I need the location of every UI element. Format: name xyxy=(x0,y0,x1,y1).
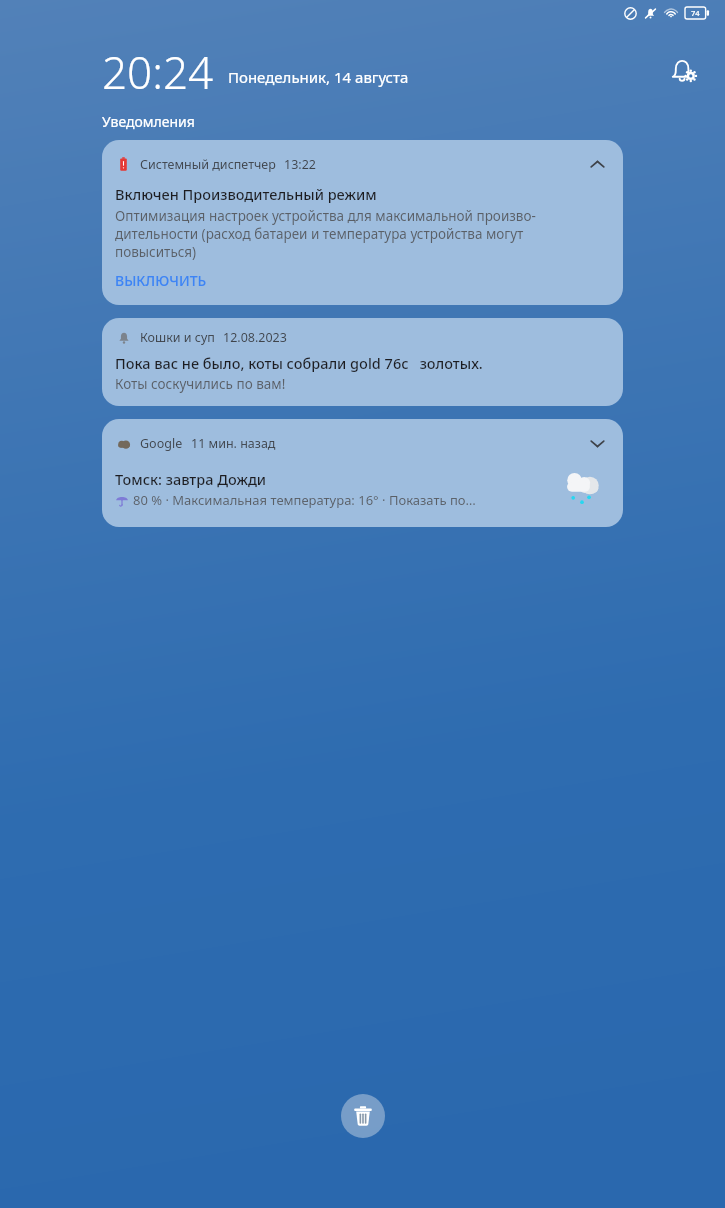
staticText: Понедельник, 14 августа xyxy=(228,67,409,87)
staticText: Кошки и суп xyxy=(140,329,215,346)
button[interactable]: Expand xyxy=(584,430,610,456)
staticText: Включен Производительный режим xyxy=(115,184,377,204)
button[interactable]: Clear all notifications xyxy=(341,1094,385,1138)
staticText: 80 % · Максимальная температура: 16° · П… xyxy=(133,491,476,509)
button[interactable]: ВЫКЛЮЧИТЬ xyxy=(115,271,207,290)
button[interactable]: Кошки и суп xyxy=(102,318,623,406)
staticText: Коты соскучились по вам! xyxy=(115,375,286,393)
staticText: 13:22 xyxy=(284,156,316,173)
button[interactable]: Collapse xyxy=(584,151,610,177)
staticText: 12.08.2023 xyxy=(223,329,287,346)
staticText: ВЫКЛЮЧИТЬ xyxy=(115,271,207,290)
button[interactable]: Системный диспетчер xyxy=(102,140,623,305)
staticText: 11 мин. назад xyxy=(191,435,276,452)
button[interactable]: Google xyxy=(102,419,623,527)
staticText: Томск: завтра Дожди xyxy=(115,469,267,489)
staticText: 74 xyxy=(691,8,700,18)
button[interactable]: Notification settings xyxy=(659,48,707,96)
staticText: Google xyxy=(140,435,183,452)
staticText: Пока вас не было, коты собрали gold 76c … xyxy=(115,353,483,373)
staticText: Оптимизация настроек устройства для макс… xyxy=(115,207,536,261)
staticText: Уведомления xyxy=(102,112,195,131)
staticText: 20:24 xyxy=(102,42,214,102)
staticText: Системный диспетчер xyxy=(140,156,276,173)
